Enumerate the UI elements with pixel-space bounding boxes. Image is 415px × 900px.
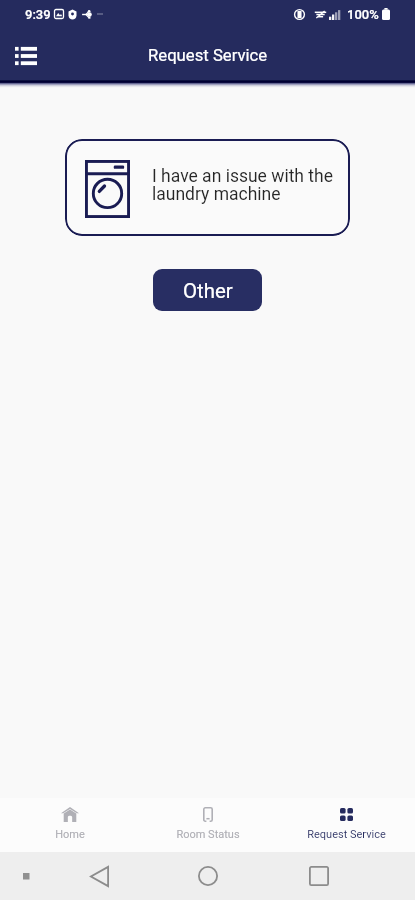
staticText: Room Status [176, 828, 240, 841]
staticText: Other [183, 279, 233, 303]
staticText: 9:39 [25, 7, 51, 22]
button[interactable]: Back [84, 861, 114, 891]
button[interactable]: Room Status [139, 796, 277, 850]
staticText: Home [55, 828, 85, 841]
button[interactable]: Other [153, 269, 262, 311]
button[interactable]: Request Service [277, 796, 415, 850]
button[interactable]: Home [0, 796, 139, 850]
staticText: Request Service [307, 828, 386, 841]
button[interactable]: Home [193, 861, 223, 891]
staticText: 100% [347, 7, 379, 22]
staticText: I have an issue with the laundry machine [152, 166, 340, 204]
button[interactable]: Open navigation menu [4, 32, 48, 76]
button[interactable]: I have an issue with the laundry machine [65, 139, 350, 236]
button[interactable]: Recent apps [304, 861, 334, 891]
staticText: Request Service [148, 46, 268, 66]
